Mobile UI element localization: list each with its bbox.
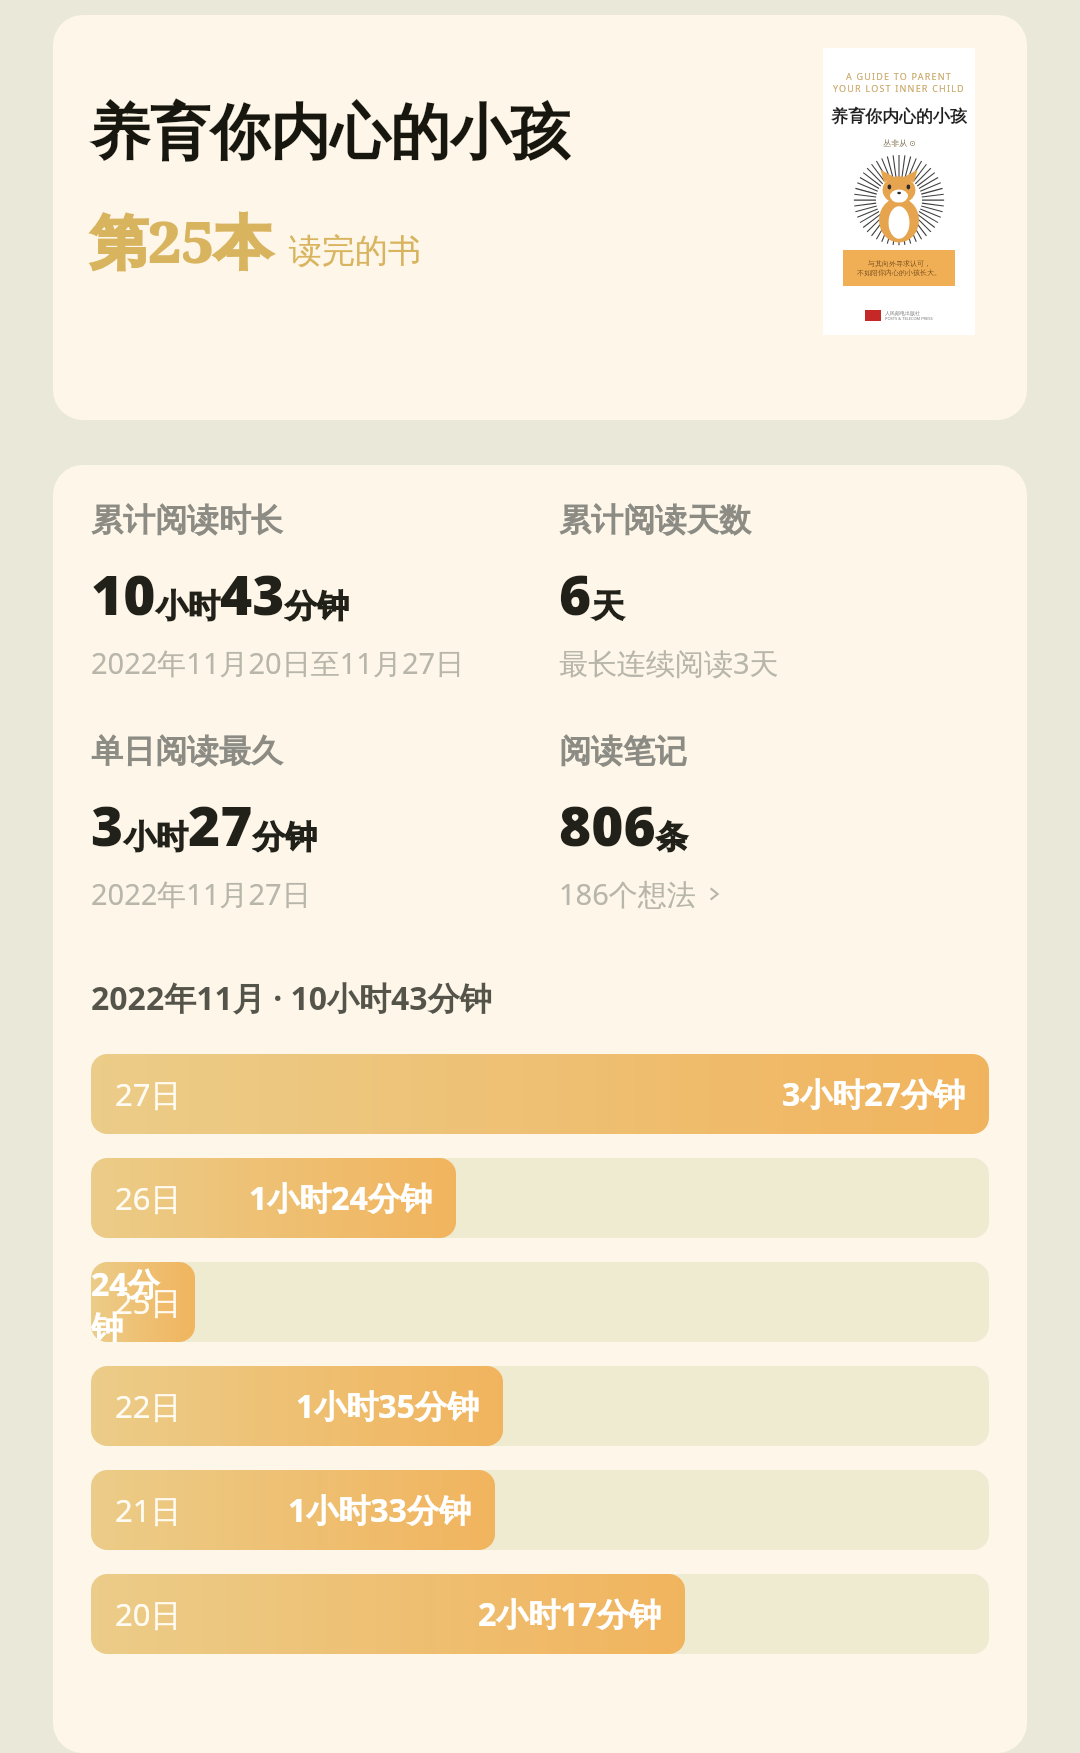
staticText: 3 bbox=[91, 787, 124, 862]
staticText: 天 bbox=[592, 586, 624, 626]
staticText: 21日 bbox=[115, 1489, 182, 1531]
staticText: 6 bbox=[559, 556, 592, 631]
button[interactable]: 累计阅读时长 bbox=[91, 500, 559, 683]
staticText: 2022年11月 · 10小时43分钟 bbox=[91, 976, 492, 1020]
staticText: 养育你内心的小孩 bbox=[831, 106, 967, 127]
staticText: 43 bbox=[220, 556, 285, 631]
staticText: 2022年11月27日 bbox=[91, 874, 311, 914]
staticText: 3小时27分钟 bbox=[782, 1072, 965, 1116]
staticText: 24分钟 bbox=[91, 1262, 171, 1342]
button[interactable]: 阅读笔记 bbox=[559, 731, 1027, 914]
button[interactable]: 20日 bbox=[91, 1574, 989, 1654]
staticText: 读完的书 bbox=[289, 230, 421, 272]
staticText: 最长连续阅读3天 bbox=[559, 643, 779, 683]
staticText: 小时 bbox=[156, 586, 220, 626]
staticText: 22日 bbox=[115, 1385, 182, 1427]
staticText: A GUIDE TO PARENT bbox=[846, 70, 952, 82]
staticText: 累计阅读时长 bbox=[91, 500, 283, 540]
staticText: 26日 bbox=[115, 1177, 182, 1219]
button[interactable]: 累计阅读天数 bbox=[559, 500, 1027, 683]
button[interactable]: 22日 bbox=[91, 1366, 989, 1446]
staticText: 阅读笔记 bbox=[559, 731, 687, 771]
staticText: 27 bbox=[188, 787, 253, 862]
staticText: 丛非从 ⊙ bbox=[883, 137, 916, 148]
other: 查看想法 bbox=[704, 884, 724, 904]
staticText: 累计阅读天数 bbox=[559, 500, 751, 540]
staticText: 养育你内心的小孩 bbox=[90, 95, 570, 171]
staticText: 分钟 bbox=[285, 586, 349, 626]
staticText: 20日 bbox=[115, 1593, 182, 1635]
button[interactable]: 27日 bbox=[91, 1054, 989, 1134]
staticText: 第25本 bbox=[90, 201, 273, 280]
staticText: 单日阅读最久 bbox=[91, 731, 283, 771]
button[interactable]: 25日 bbox=[91, 1262, 989, 1342]
button[interactable]: 26日 bbox=[91, 1158, 989, 1238]
staticText: 不如陪你内心的小孩长大。 bbox=[857, 268, 941, 277]
staticText: 2小时17分钟 bbox=[478, 1592, 661, 1636]
staticText: 2022年11月20日至11月27日 bbox=[91, 643, 465, 683]
staticText: 分钟 bbox=[253, 817, 317, 857]
staticText: 1小时24分钟 bbox=[249, 1176, 432, 1220]
staticText: 27日 bbox=[115, 1073, 182, 1115]
staticText: YOUR LOST INNER CHILD bbox=[833, 82, 965, 94]
staticText: 与其向外寻求认可， bbox=[868, 259, 931, 268]
staticText: 人民邮电出版社 bbox=[885, 310, 920, 316]
button[interactable]: 单日阅读最久 bbox=[91, 731, 559, 914]
staticText: 1小时33分钟 bbox=[288, 1488, 471, 1532]
staticText: 条 bbox=[656, 817, 688, 857]
staticText: 10 bbox=[91, 556, 156, 631]
staticText: 186个想法 bbox=[559, 874, 696, 914]
button[interactable]: 养育你内心的小孩 bbox=[53, 15, 1027, 420]
staticText: 806 bbox=[559, 787, 656, 862]
button[interactable]: 21日 bbox=[91, 1470, 989, 1550]
staticText: 1小时35分钟 bbox=[296, 1384, 479, 1428]
staticText: 小时 bbox=[124, 817, 188, 857]
staticText: 25日 bbox=[115, 1281, 182, 1323]
staticText: POSTS & TELECOM PRESS bbox=[885, 316, 933, 321]
